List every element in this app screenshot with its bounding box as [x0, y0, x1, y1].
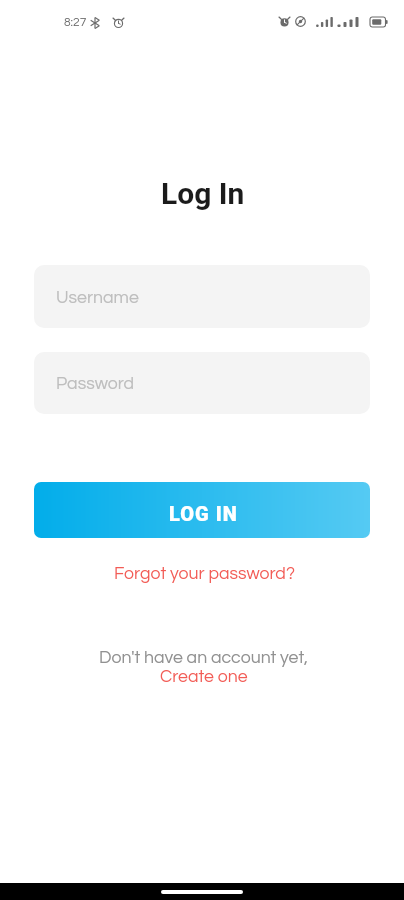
staticText: Create one [160, 667, 248, 685]
other: Silent mode [295, 16, 306, 27]
other: Signal strength SIM 1 [315, 17, 334, 27]
button[interactable]: Create one [148, 666, 256, 686]
other: Battery [370, 17, 388, 27]
other: Home [161, 890, 243, 894]
button[interactable]: Username [34, 265, 370, 328]
button[interactable]: Forgot your password? [102, 562, 303, 584]
staticText: Don't have an account yet, [99, 648, 308, 666]
staticText: Username [56, 288, 139, 306]
staticText: Log In [161, 176, 245, 211]
button[interactable]: LOG IN [34, 482, 370, 538]
button[interactable]: Password [34, 352, 370, 414]
other: Alarm [279, 16, 290, 27]
staticText: LOG IN [169, 502, 238, 525]
other: Alarm set [113, 17, 124, 28]
staticText: Password [56, 374, 135, 392]
staticText: Forgot your password? [114, 564, 295, 582]
other: Signal strength SIM 2 [336, 17, 360, 27]
other: Bluetooth [89, 17, 101, 29]
staticText: 8:27 [64, 16, 87, 28]
